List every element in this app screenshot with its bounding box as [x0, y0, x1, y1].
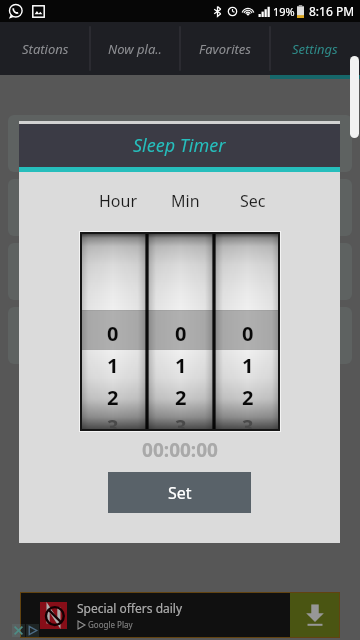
staticText: Sec	[240, 190, 266, 212]
staticText: Google Play	[88, 619, 133, 630]
staticText: Settings	[292, 40, 338, 58]
staticText: Special offers daily	[77, 600, 183, 616]
staticText: Favorites	[199, 40, 251, 58]
button[interactable]	[8, 243, 352, 300]
staticText: 3	[242, 413, 254, 429]
button[interactable]	[8, 307, 352, 364]
staticText: 2	[175, 384, 187, 411]
staticText: 1	[107, 352, 119, 379]
staticText: Hour	[99, 190, 138, 212]
staticText: Stations	[22, 40, 69, 58]
staticText: Sleep Timer	[133, 133, 226, 158]
staticText: 1	[242, 352, 254, 379]
button[interactable]: Now pla..	[90, 22, 180, 75]
button[interactable]	[8, 179, 352, 236]
button[interactable]: Download	[290, 593, 339, 637]
staticText: Min	[171, 190, 200, 212]
button[interactable]: Set	[108, 472, 251, 513]
button[interactable]: Close ad	[12, 624, 25, 637]
staticText: 2	[107, 384, 119, 411]
button[interactable]: 0	[150, 234, 211, 429]
staticText: 19%	[273, 4, 295, 19]
staticText: 8:16 PM	[309, 3, 355, 19]
staticText: 0	[107, 320, 119, 347]
staticText: 0	[175, 320, 187, 347]
staticText: Set	[168, 482, 192, 504]
button[interactable]	[8, 115, 352, 172]
button[interactable]: Stations	[0, 22, 90, 75]
staticText: 1	[175, 352, 187, 379]
button[interactable]: 0	[82, 234, 144, 429]
button[interactable]: Special offers daily	[21, 593, 339, 637]
button[interactable]: Ad info	[26, 624, 39, 637]
staticText: 3	[107, 413, 119, 429]
button[interactable]: Favorites	[180, 22, 270, 75]
staticText: 3	[175, 413, 187, 429]
staticText: 2	[242, 384, 254, 411]
button[interactable]: Settings	[270, 22, 360, 75]
staticText: Now pla..	[108, 40, 162, 58]
staticText: 0	[242, 320, 254, 347]
button[interactable]: 0	[217, 234, 278, 429]
staticText: 00:00:00	[142, 437, 218, 463]
